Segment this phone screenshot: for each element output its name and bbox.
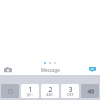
staticText: Message: [41, 67, 60, 73]
staticText: DEF: [67, 93, 74, 97]
button[interactable]: Backspace: [81, 84, 99, 98]
staticText: 3: [68, 85, 73, 95]
button[interactable]: Send message: [84, 64, 100, 75]
button[interactable]: Emoji keyboard: [1, 84, 19, 98]
button[interactable]: 3: [61, 84, 79, 98]
button[interactable]: Camera: [0, 64, 16, 75]
staticText: 1: [28, 85, 33, 95]
button[interactable]: 1: [21, 84, 39, 98]
staticText: @/:: [27, 93, 33, 97]
staticText: 2: [48, 85, 53, 95]
staticText: ABC: [46, 93, 54, 97]
button[interactable]: 2: [41, 84, 59, 98]
